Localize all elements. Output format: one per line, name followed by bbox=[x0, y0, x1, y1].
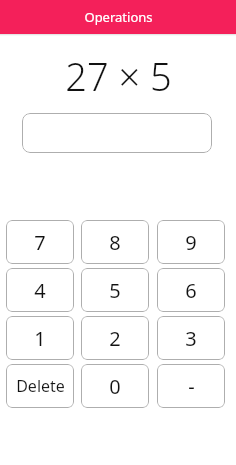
button[interactable]: Answer input field bbox=[22, 113, 212, 153]
button[interactable]: 7 bbox=[6, 220, 74, 264]
staticText: 5 bbox=[109, 277, 121, 304]
staticText: 7 bbox=[34, 229, 46, 256]
staticText: 8 bbox=[109, 229, 121, 256]
staticText: Delete bbox=[16, 375, 65, 397]
button[interactable]: 6 bbox=[157, 268, 225, 312]
staticText: 9 bbox=[185, 229, 197, 256]
staticText: 0 bbox=[109, 373, 121, 400]
button[interactable]: 1 bbox=[6, 316, 74, 360]
button[interactable]: 4 bbox=[6, 268, 74, 312]
button[interactable]: - bbox=[157, 364, 225, 408]
staticText: 4 bbox=[34, 277, 46, 304]
staticText: 1 bbox=[34, 325, 46, 352]
staticText: 2 bbox=[109, 325, 121, 352]
staticText: 3 bbox=[185, 325, 197, 352]
staticText: Operations bbox=[84, 8, 153, 26]
staticText: 27 × 5 bbox=[65, 50, 172, 98]
button[interactable]: 9 bbox=[157, 220, 225, 264]
staticText: - bbox=[188, 373, 195, 400]
button[interactable]: Delete bbox=[6, 364, 74, 408]
staticText: 6 bbox=[185, 277, 197, 304]
button[interactable]: 2 bbox=[81, 316, 149, 360]
button[interactable]: 0 bbox=[81, 364, 149, 408]
button[interactable]: 5 bbox=[81, 268, 149, 312]
button[interactable]: 3 bbox=[157, 316, 225, 360]
button[interactable]: 8 bbox=[81, 220, 149, 264]
